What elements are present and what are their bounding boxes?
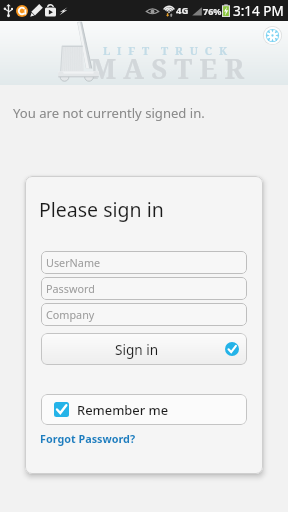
staticText: You are not currently signed in. bbox=[13, 104, 205, 122]
staticText: 76% bbox=[203, 5, 222, 17]
button[interactable]: Settings bbox=[262, 25, 283, 46]
staticText: Password bbox=[46, 281, 95, 296]
staticText: 4G bbox=[176, 4, 189, 17]
button[interactable]: Remember me bbox=[41, 394, 247, 425]
button[interactable]: UserName bbox=[41, 251, 247, 274]
staticText: UserName bbox=[46, 255, 101, 270]
staticText: Remember me bbox=[77, 401, 169, 419]
button[interactable]: Company bbox=[41, 303, 247, 326]
staticText: L I F T T R U C K bbox=[103, 43, 230, 58]
staticText: 3:14 PM bbox=[233, 2, 284, 20]
staticText: Sign in bbox=[115, 340, 159, 359]
button[interactable]: Sign in bbox=[41, 333, 247, 365]
staticText: M A S T E R bbox=[90, 50, 245, 87]
staticText: Please sign in bbox=[39, 196, 164, 223]
button[interactable]: Forgot Password? bbox=[40, 431, 136, 446]
staticText: Company bbox=[46, 307, 95, 322]
button[interactable]: Password bbox=[41, 277, 247, 300]
